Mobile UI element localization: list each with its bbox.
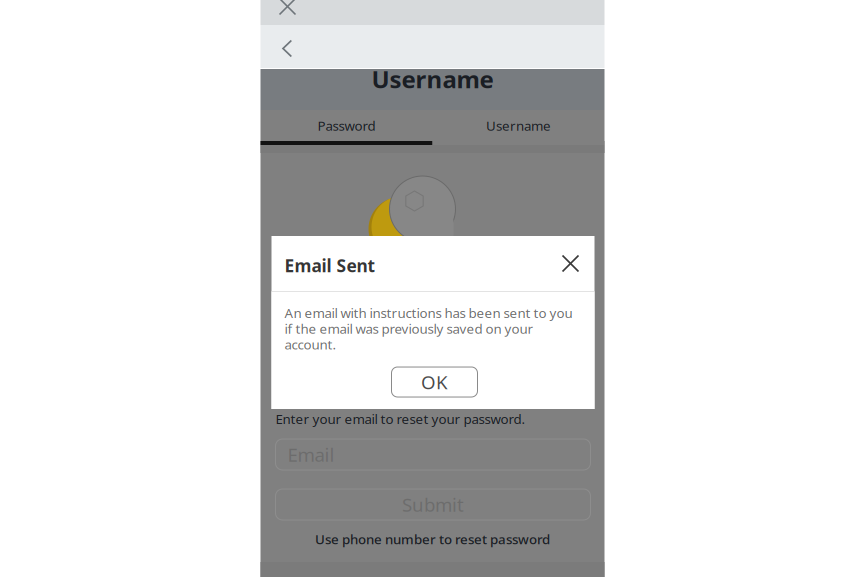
staticText: Email Sent (284, 254, 375, 277)
staticText: OK (421, 370, 448, 394)
button[interactable]: Close (260, 0, 304, 25)
button[interactable]: Close (555, 248, 585, 278)
button[interactable]: Back (260, 25, 304, 68)
staticText: Use phone number to reset password (315, 530, 550, 548)
staticText: An email with instructions has been sent… (284, 304, 572, 353)
staticText: Email (287, 442, 334, 467)
button[interactable]: Submit (275, 489, 590, 520)
button[interactable]: OK (391, 367, 477, 397)
staticText: Enter your email to reset your password. (275, 410, 525, 428)
staticText: Username (371, 63, 493, 95)
staticText: Password (317, 117, 375, 134)
staticText: Submit (402, 492, 464, 517)
button[interactable]: Username (432, 110, 604, 141)
button[interactable]: Password (260, 110, 432, 141)
button[interactable]: Use phone number to reset password (260, 530, 604, 548)
staticText: Username (486, 117, 551, 134)
